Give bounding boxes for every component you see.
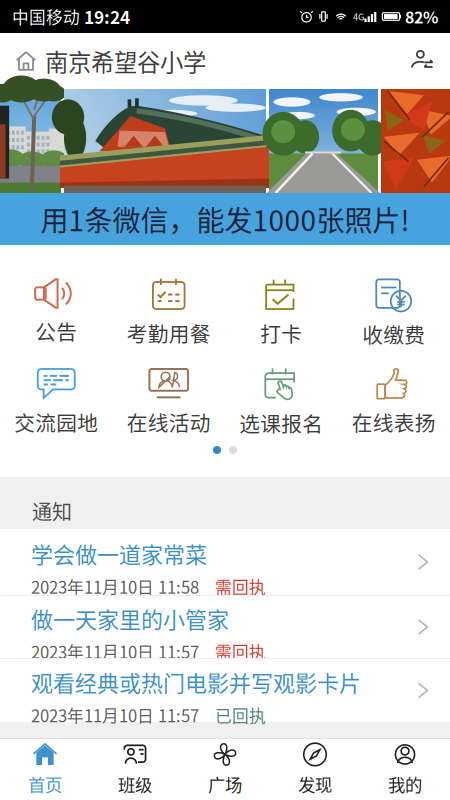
button[interactable]: 考勤用餐 xyxy=(112,245,225,334)
staticText: 2023年11月10日 11:58 xyxy=(31,574,199,598)
staticText: 交流园地 xyxy=(14,407,98,437)
staticText: 在线表扬 xyxy=(352,407,436,437)
button[interactable]: 做一天家里的小管家 xyxy=(0,596,450,658)
button[interactable]: 收缴费 xyxy=(337,245,450,334)
button[interactable]: 在线活动 xyxy=(112,334,225,423)
staticText: 需回执 xyxy=(215,574,266,598)
button[interactable]: 交流园地 xyxy=(0,334,112,423)
staticText: 发现 xyxy=(298,771,332,797)
staticText: 19:24 xyxy=(80,4,130,29)
staticText: 2023年11月10日 11:57 xyxy=(31,639,199,663)
button[interactable]: 公告 xyxy=(0,245,112,334)
staticText: 南京希望谷小学 xyxy=(45,44,206,78)
button[interactable]: 打卡 xyxy=(225,245,337,334)
staticText: 我的 xyxy=(388,771,422,797)
button[interactable]: 观看经典或热门电影并写观影卡片 xyxy=(0,659,450,722)
staticText: 4G xyxy=(353,10,364,23)
staticText: 82% xyxy=(405,5,438,28)
button[interactable]: 学会做一道家常菜 xyxy=(0,529,450,595)
staticText: 学会做一道家常菜 xyxy=(31,537,207,569)
staticText: 公告 xyxy=(35,316,77,346)
staticText: 收缴费 xyxy=(362,319,425,349)
staticText: 考勤用餐 xyxy=(127,318,211,348)
staticText: 中国移动 xyxy=(12,4,80,28)
staticText: 广场 xyxy=(208,771,242,797)
button[interactable]: 班级 xyxy=(90,738,180,800)
staticText: 通知 xyxy=(32,496,72,525)
button[interactable]: 切换身份 xyxy=(400,39,444,83)
staticText: 2023年11月10日 11:57 xyxy=(31,703,199,727)
button[interactable]: 我的 xyxy=(360,738,450,800)
staticText: 班级 xyxy=(118,771,152,797)
button[interactable]: 首页 xyxy=(0,738,90,800)
staticText: 在线活动 xyxy=(127,407,211,437)
staticText: 选课报名 xyxy=(239,408,323,438)
staticText: 打卡 xyxy=(260,318,302,348)
button[interactable]: 广场 xyxy=(180,738,270,800)
staticText: 做一天家里的小管家 xyxy=(31,602,229,634)
staticText: 观看经典或热门电影并写观影卡片 xyxy=(31,666,361,698)
staticText: 需回执 xyxy=(215,639,266,663)
button[interactable]: 选课报名 xyxy=(225,334,337,423)
button[interactable]: 在线表扬 xyxy=(337,334,450,423)
button[interactable]: 发现 xyxy=(270,738,360,800)
staticText: 首页 xyxy=(28,771,62,797)
staticText: 用1条微信，能发1000张照片! xyxy=(40,199,409,239)
staticText: 已回执 xyxy=(215,703,266,727)
